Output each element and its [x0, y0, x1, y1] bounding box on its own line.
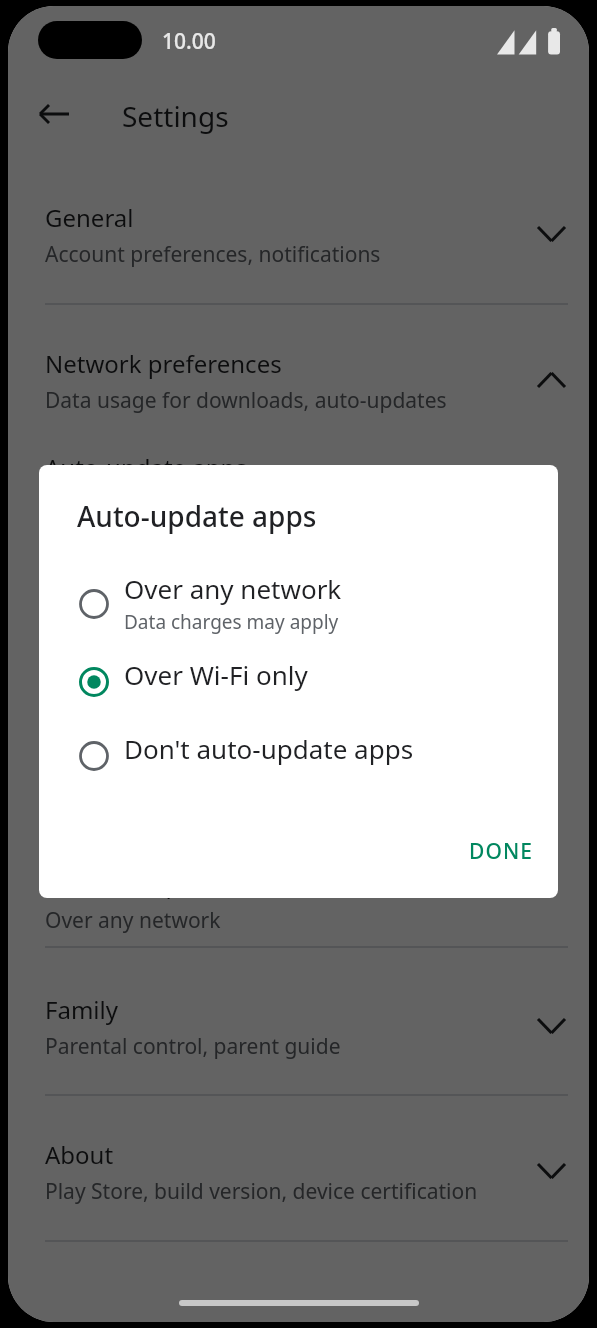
- staticText: Data usage for downloads, auto-updates: [45, 386, 447, 415]
- staticText: Account preferences, notifications: [45, 240, 381, 269]
- staticText: Notify me: [45, 555, 156, 588]
- staticText: Over any network: [124, 571, 342, 606]
- staticText: Settings: [122, 97, 229, 135]
- staticText: Theme: [45, 659, 123, 692]
- button[interactable]: Theme: [8, 657, 589, 741]
- button[interactable]: Don't auto-update apps: [39, 729, 558, 785]
- staticText: About: [45, 1138, 114, 1171]
- staticText: Family: [45, 993, 118, 1026]
- staticText: Auto-update apps: [45, 451, 247, 484]
- staticText: Over Wi-Fi only: [45, 490, 194, 519]
- staticText: Parental control, parent guide: [45, 1032, 341, 1061]
- button[interactable]: [8, 6, 589, 1322]
- button[interactable]: Download preference: [8, 865, 589, 949]
- button[interactable]: Over any network: [39, 569, 558, 645]
- staticText: Over Wi-Fi only: [124, 657, 308, 692]
- button[interactable]: Clear local search history: [8, 761, 589, 845]
- staticText: DONE: [469, 837, 533, 866]
- staticText: Play Store, build version, device certif…: [45, 1177, 478, 1206]
- staticText: Don't auto-update apps: [124, 731, 414, 766]
- staticText: General: [45, 201, 134, 234]
- button[interactable]: Network preferences: [8, 345, 589, 429]
- button[interactable]: Back: [36, 96, 72, 132]
- staticText: Data charges may apply: [124, 609, 339, 635]
- staticText: Clear local search history: [45, 763, 327, 796]
- staticText: Notify me about updates: [45, 594, 291, 623]
- staticText: Auto-update apps: [77, 497, 317, 535]
- button[interactable]: General: [8, 199, 589, 283]
- staticText: Over any network: [45, 906, 221, 935]
- button[interactable]: Auto-update apps: [8, 449, 589, 533]
- button[interactable]: Over Wi-Fi only: [39, 655, 558, 711]
- button[interactable]: Family: [8, 991, 589, 1075]
- button[interactable]: DONE: [457, 830, 545, 872]
- staticText: Download preference: [45, 867, 288, 900]
- button[interactable]: About: [8, 1136, 589, 1220]
- button[interactable]: Notify me: [8, 553, 589, 637]
- staticText: Network preferences: [45, 347, 282, 380]
- staticText: 10.00: [162, 27, 216, 56]
